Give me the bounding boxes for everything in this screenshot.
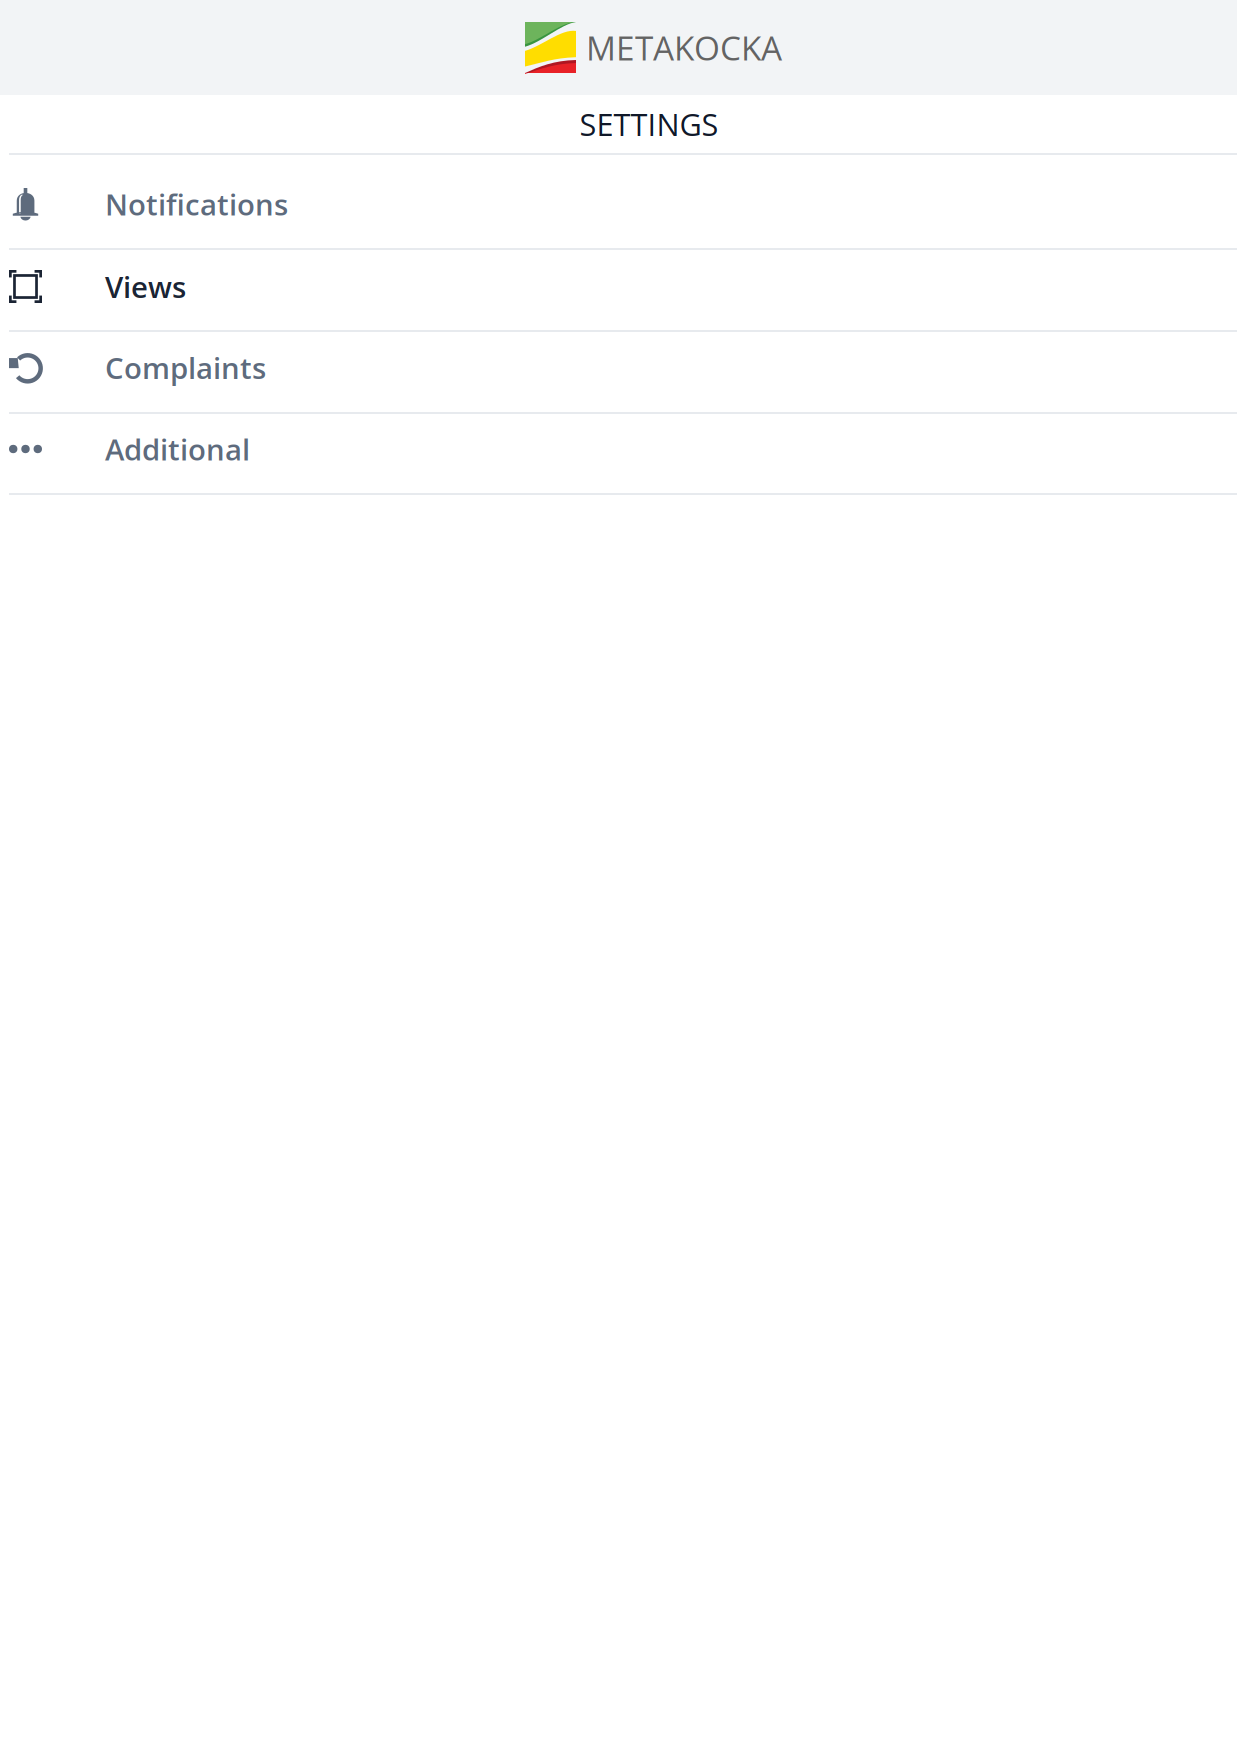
- button[interactable]: Views: [0, 250, 1237, 332]
- staticText: SETTINGS: [579, 103, 718, 145]
- staticText: METAKOCKA: [586, 25, 782, 70]
- staticText: Notifications: [105, 184, 288, 224]
- button[interactable]: Complaints: [0, 332, 1237, 414]
- staticText: Additional: [105, 429, 250, 469]
- button[interactable]: Additional: [0, 414, 1237, 495]
- staticText: Views: [105, 266, 186, 306]
- button[interactable]: Notifications: [0, 155, 1237, 250]
- staticText: Complaints: [105, 347, 266, 387]
